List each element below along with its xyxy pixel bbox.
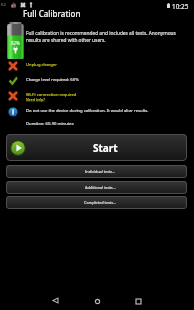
button[interactable]: Completed tests...: [6, 196, 187, 209]
button[interactable]: Back: [41, 288, 69, 310]
staticText: Full calibration is recommended and incl…: [26, 30, 182, 44]
staticText: Individual tests...: [85, 169, 116, 174]
button[interactable]: Additional tests...: [6, 181, 187, 194]
staticText: Start: [93, 141, 118, 155]
staticText: Do not use the device during calibration…: [26, 108, 149, 114]
staticText: Need help?: [26, 97, 45, 102]
button[interactable]: Home: [83, 288, 111, 310]
button[interactable]: Start: [6, 134, 187, 161]
staticText: Full Calibration: [23, 8, 81, 19]
button[interactable]: Need help?: [26, 97, 45, 102]
staticText: Unplug charger: [26, 62, 57, 68]
staticText: Completed tests...: [84, 200, 117, 205]
button[interactable]: Recent apps: [124, 288, 152, 310]
staticText: 62%: [11, 40, 20, 46]
staticText: 62: [1, 2, 6, 8]
button[interactable]: Individual tests...: [6, 165, 187, 178]
staticText: Wi-Fi connection required: [26, 92, 77, 98]
staticText: Charge level required: 60%: [26, 77, 79, 83]
staticText: 10:25: [172, 2, 189, 11]
staticText: Duration: 60-90 minutes: [26, 121, 74, 127]
staticText: Additional tests...: [85, 185, 116, 190]
